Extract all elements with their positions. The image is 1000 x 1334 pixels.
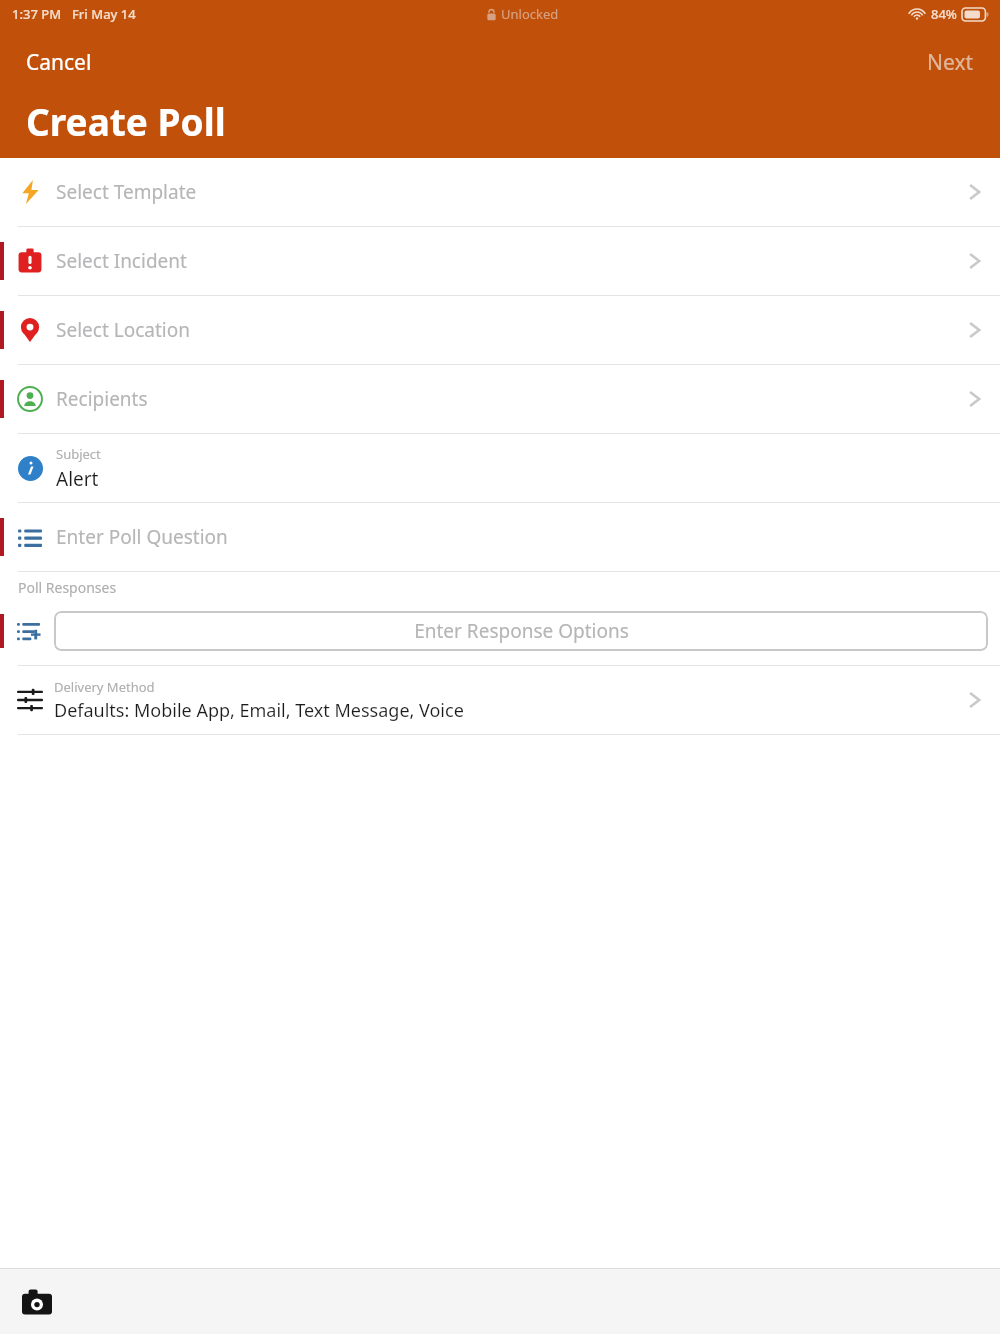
- button[interactable]: Select Location: [0, 296, 1000, 364]
- staticText: Create Poll: [26, 96, 226, 146]
- staticText: Enter Response Options: [414, 618, 629, 644]
- button[interactable]: Cancel: [12, 42, 106, 83]
- button[interactable]: Select Incident: [0, 227, 1000, 295]
- staticText: Cancel: [26, 48, 92, 77]
- button[interactable]: Delivery Method: [0, 666, 1000, 734]
- button[interactable]: Select Template: [0, 158, 1000, 226]
- staticText: Enter Poll Question: [56, 524, 228, 550]
- staticText: Subject: [56, 445, 101, 463]
- staticText: Select Incident: [56, 248, 187, 274]
- staticText: Delivery Method: [54, 678, 155, 696]
- staticText: 1:37 PM: [12, 5, 62, 23]
- button[interactable]: Recipients: [0, 365, 1000, 433]
- button[interactable]: Enter Poll Question: [0, 503, 1000, 571]
- staticText: Poll Responses: [18, 578, 117, 597]
- staticText: Unlocked: [501, 5, 559, 23]
- staticText: Next: [927, 48, 974, 77]
- button[interactable]: Next: [913, 42, 988, 83]
- staticText: Fri May 14: [72, 5, 136, 23]
- button[interactable]: Camera: [14, 1281, 60, 1323]
- staticText: Recipients: [56, 386, 148, 412]
- button[interactable]: Subject: [0, 434, 1000, 502]
- staticText: Alert: [56, 466, 99, 492]
- button[interactable]: Enter Response Options: [54, 611, 988, 651]
- staticText: 84%: [931, 5, 957, 23]
- staticText: Select Location: [56, 317, 190, 343]
- staticText: Defaults: Mobile App, Email, Text Messag…: [54, 698, 464, 723]
- staticText: Select Template: [56, 179, 197, 205]
